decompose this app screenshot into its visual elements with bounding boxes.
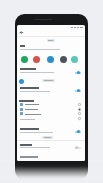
button[interactable]: Colour — [47, 56, 54, 63]
button[interactable] — [17, 141, 85, 151]
button[interactable]: Colour — [60, 56, 67, 63]
button[interactable] — [47, 39, 55, 42]
button[interactable]: Toggle — [74, 145, 82, 150]
button[interactable]: Toggle — [74, 88, 82, 93]
button[interactable] — [42, 136, 53, 139]
button[interactable] — [17, 65, 85, 75]
button[interactable] — [17, 107, 85, 112]
button[interactable]: Toggle — [74, 129, 82, 134]
button[interactable] — [17, 84, 85, 94]
button[interactable]: Colour — [33, 56, 40, 63]
button[interactable]: Back — [18, 28, 26, 36]
button[interactable]: Colour — [21, 56, 28, 63]
button[interactable] — [42, 79, 55, 82]
button[interactable] — [17, 102, 85, 107]
button[interactable] — [17, 112, 85, 117]
button[interactable] — [17, 125, 85, 135]
button[interactable]: Colour — [71, 56, 78, 63]
button[interactable]: Toggle — [74, 70, 82, 75]
